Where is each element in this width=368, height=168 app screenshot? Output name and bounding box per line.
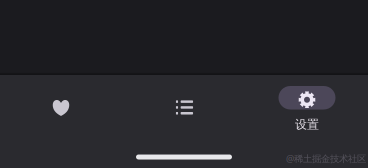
button[interactable]: Favorites (0, 76, 122, 132)
button[interactable]: List (123, 76, 246, 132)
button[interactable]: 设置 (246, 76, 368, 132)
staticText: @稀土掘金技术社区 (286, 152, 366, 165)
staticText: 设置 (295, 117, 319, 132)
